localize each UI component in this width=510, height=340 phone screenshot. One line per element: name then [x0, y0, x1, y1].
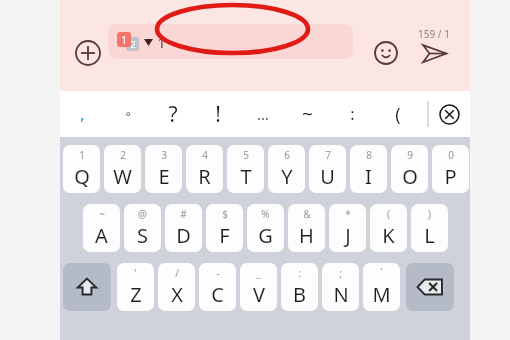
staticText: I — [365, 163, 372, 190]
button[interactable]: ? — [150, 91, 195, 137]
staticText: 2 — [130, 38, 136, 50]
staticText: L — [424, 222, 435, 249]
staticText: ( — [395, 102, 401, 127]
staticText: ∘ — [124, 107, 132, 121]
staticText: 1 — [121, 33, 127, 47]
staticText: N — [333, 281, 349, 308]
button[interactable]: ~ — [83, 204, 120, 252]
staticText: * — [345, 207, 351, 221]
button[interactable]: 4 — [186, 145, 223, 193]
button[interactable]: ; — [322, 263, 359, 311]
staticText: D — [176, 222, 191, 249]
staticText: : — [350, 103, 355, 125]
button[interactable]: $ — [206, 204, 243, 252]
staticText: U — [320, 163, 335, 190]
staticText: ~ — [99, 207, 105, 221]
button[interactable]: 6 — [268, 145, 305, 193]
staticText: T — [240, 163, 252, 190]
staticText: & — [303, 207, 311, 221]
staticText: R — [198, 163, 211, 190]
button[interactable]: Add attachment — [68, 33, 108, 73]
staticText: K — [382, 222, 395, 249]
staticText: - — [216, 266, 220, 280]
button[interactable]: / — [158, 263, 195, 311]
staticText: @ — [138, 207, 147, 221]
button[interactable]: 2 — [108, 24, 353, 59]
button[interactable]: 7 — [309, 145, 346, 193]
staticText: ) — [428, 207, 431, 221]
staticText: ` — [380, 266, 383, 280]
button[interactable]: 5 — [227, 145, 264, 193]
button[interactable]: ) — [411, 204, 448, 252]
staticText: ~ — [302, 101, 313, 127]
button[interactable]: Shift — [63, 263, 111, 311]
staticText: $ — [222, 207, 228, 221]
staticText: H — [299, 222, 314, 249]
staticText: X — [171, 281, 183, 308]
staticText: ? — [168, 100, 178, 129]
staticText: W — [113, 163, 132, 190]
staticText: 4 — [202, 148, 208, 162]
staticText: ! — [215, 100, 221, 129]
button[interactable]: & — [288, 204, 325, 252]
button[interactable]: 3 — [145, 145, 182, 193]
button[interactable]: ∘ — [105, 91, 150, 137]
button[interactable]: 8 — [350, 145, 387, 193]
button[interactable]: ' — [117, 263, 154, 311]
button[interactable]: 0 — [432, 145, 469, 193]
staticText: 1 — [79, 148, 85, 162]
staticText: , — [80, 103, 85, 125]
staticText: 7 — [325, 148, 331, 162]
staticText: Y — [281, 163, 293, 190]
button[interactable]: 9 — [391, 145, 428, 193]
staticText: 3 — [161, 148, 167, 162]
staticText: O — [402, 163, 418, 190]
staticText: M — [372, 281, 391, 308]
staticText: % — [261, 207, 270, 221]
button[interactable]: ` — [363, 263, 400, 311]
button[interactable]: Send — [411, 22, 457, 68]
button[interactable]: : — [330, 91, 375, 137]
button[interactable]: ( — [375, 91, 420, 137]
button[interactable]: , — [60, 91, 105, 137]
button[interactable]: : — [281, 263, 318, 311]
staticText: Z — [130, 281, 142, 308]
staticText: C — [211, 281, 224, 308]
staticText: 6 — [284, 148, 290, 162]
button[interactable]: @ — [124, 204, 161, 252]
staticText: … — [257, 104, 269, 124]
staticText: : — [298, 266, 301, 280]
staticText: 9 — [407, 148, 413, 162]
button[interactable]: ~ — [285, 91, 330, 137]
button[interactable]: _ — [240, 263, 277, 311]
button[interactable]: ! — [195, 91, 240, 137]
button[interactable]: - — [199, 263, 236, 311]
button[interactable]: 1 — [63, 145, 100, 193]
button[interactable]: 2 — [104, 145, 141, 193]
button[interactable]: Emoji — [367, 34, 405, 72]
staticText: 159 / 1 — [418, 27, 450, 41]
button[interactable]: Clear — [429, 91, 470, 137]
staticText: A — [95, 222, 108, 249]
button[interactable]: # — [165, 204, 202, 252]
staticText: 8 — [366, 148, 372, 162]
staticText: ; — [339, 266, 342, 280]
button[interactable]: ( — [370, 204, 407, 252]
staticText: 0 — [448, 148, 454, 162]
staticText: J — [345, 222, 351, 249]
button[interactable]: … — [240, 91, 285, 137]
staticText: P — [444, 163, 457, 190]
button[interactable]: Backspace — [406, 263, 454, 311]
staticText: Q — [74, 163, 90, 190]
staticText: 1 — [157, 32, 166, 52]
button[interactable]: * — [329, 204, 366, 252]
staticText: ( — [387, 207, 390, 221]
staticText: _ — [256, 266, 261, 280]
staticText: S — [137, 222, 148, 249]
staticText: / — [175, 266, 179, 280]
staticText: 5 — [243, 148, 249, 162]
staticText: E — [158, 163, 170, 190]
staticText: V — [253, 281, 265, 308]
button[interactable]: % — [247, 204, 284, 252]
staticText: ' — [134, 266, 137, 280]
